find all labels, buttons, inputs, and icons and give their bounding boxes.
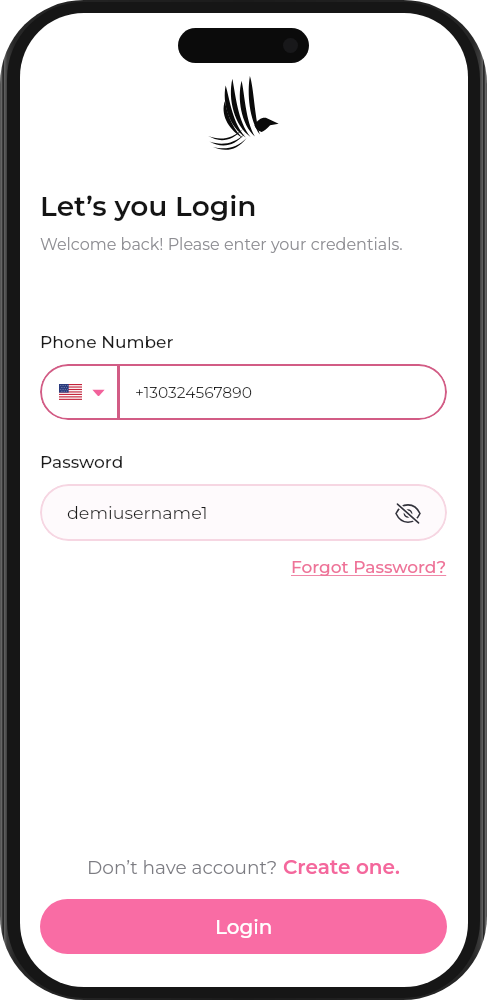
button[interactable]: Login [40,899,447,954]
staticText: Login [215,915,273,939]
staticText: +130324567890 [135,383,252,402]
button[interactable]: Select country code [40,364,117,420]
staticText: Let’s you Login [40,189,257,223]
staticText: Forgot Password? [291,557,447,578]
staticText: Welcome back! Please enter your credenti… [40,235,403,255]
staticText: Phone Number [40,332,174,353]
staticText: Don’t have account? [87,856,283,879]
button[interactable]: Show password [393,498,423,528]
staticText: Create one. [283,855,400,879]
button[interactable]: Forgot Password? [291,557,447,578]
staticText: Password [40,452,124,473]
button[interactable]: Create one. [283,855,400,879]
staticText: demiusername1 [67,502,208,523]
